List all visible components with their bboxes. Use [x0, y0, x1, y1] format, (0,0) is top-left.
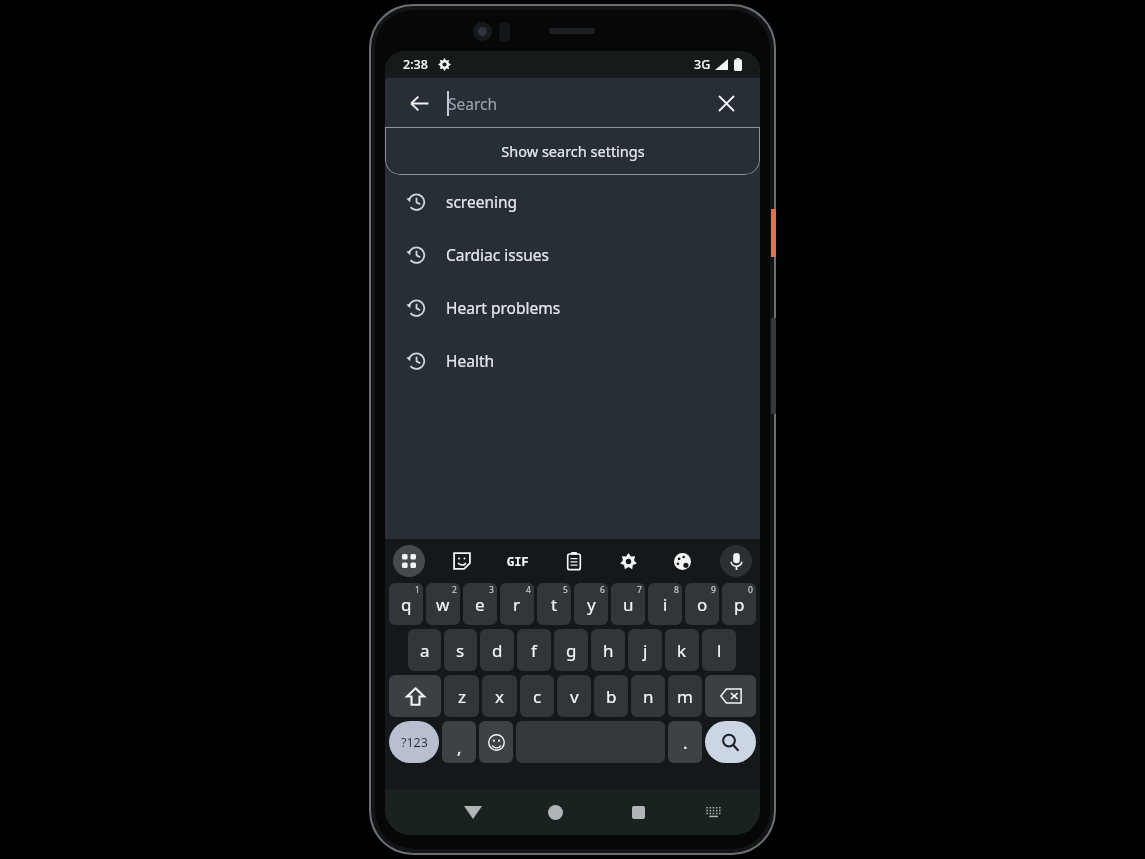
button[interactable]: r [500, 583, 534, 625]
button[interactable]: p [722, 583, 756, 625]
button[interactable]: Hide keyboard [680, 789, 747, 835]
button[interactable]: g [554, 629, 588, 671]
staticText: , [457, 736, 462, 759]
button[interactable]: k [665, 629, 699, 671]
button[interactable]: Health [385, 334, 760, 387]
button[interactable]: j [628, 629, 662, 671]
staticText: ?123 [401, 734, 428, 751]
staticText: . [683, 731, 688, 754]
button[interactable]: x [482, 675, 517, 717]
staticText: Health [446, 350, 495, 371]
button[interactable]: Emoji [479, 721, 513, 763]
staticText: 2 [452, 584, 457, 596]
button[interactable]: f [517, 629, 551, 671]
button[interactable]: Period [668, 721, 702, 763]
button[interactable]: i [648, 583, 682, 625]
staticText: x [495, 685, 504, 708]
button[interactable]: n [631, 675, 665, 717]
staticText: j [643, 639, 648, 662]
staticText: o [697, 593, 708, 616]
staticText: z [458, 685, 466, 708]
button[interactable]: screening [385, 175, 760, 228]
staticText: q [401, 593, 412, 616]
staticText: u [623, 593, 634, 616]
button[interactable]: t [537, 583, 571, 625]
button[interactable]: Home [514, 789, 597, 835]
button[interactable]: m [668, 675, 702, 717]
button[interactable]: z [444, 675, 479, 717]
button[interactable]: Back [431, 789, 514, 835]
staticText: 3 [489, 584, 494, 596]
button[interactable]: l [702, 629, 736, 671]
staticText: s [456, 639, 465, 662]
staticText: e [475, 593, 485, 616]
staticText: y [587, 593, 596, 616]
staticText: 9 [711, 584, 716, 596]
staticText: 1 [415, 584, 420, 596]
staticText: m [677, 685, 693, 708]
button[interactable]: v [557, 675, 591, 717]
staticText: h [603, 639, 614, 662]
button[interactable]: GIF [499, 545, 537, 577]
button[interactable]: Recents [597, 789, 680, 835]
staticText: 7 [637, 584, 642, 596]
button[interactable]: q [389, 583, 423, 625]
button[interactable]: s [444, 629, 477, 671]
button[interactable]: h [591, 629, 625, 671]
staticText: 5 [563, 584, 568, 596]
staticText: 6 [600, 584, 605, 596]
staticText: w [436, 593, 450, 616]
button[interactable]: Shift [389, 675, 441, 717]
staticText: c [533, 685, 542, 708]
staticText: Show search settings [501, 141, 645, 161]
staticText: k [677, 639, 687, 662]
button[interactable]: b [594, 675, 628, 717]
staticText: l [717, 639, 722, 662]
button[interactable]: Heart problems [385, 281, 760, 334]
button[interactable]: Settings [612, 545, 644, 577]
staticText: b [606, 685, 617, 708]
button[interactable]: Clipboard [558, 545, 590, 577]
button[interactable]: Search [705, 721, 756, 763]
button[interactable]: Switch keyboard [393, 545, 425, 577]
staticText: d [492, 639, 503, 662]
button[interactable]: a [408, 629, 441, 671]
button[interactable]: ?123 [389, 721, 439, 763]
button[interactable]: w [426, 583, 460, 625]
button[interactable]: Back [402, 86, 436, 120]
staticText: i [663, 593, 668, 616]
button[interactable]: Show search settings [385, 127, 760, 175]
button[interactable]: e [463, 583, 497, 625]
staticText: Heart problems [446, 297, 561, 318]
button[interactable]: o [685, 583, 719, 625]
staticText: f [531, 639, 537, 662]
button[interactable]: Theme [666, 545, 698, 577]
button[interactable]: d [480, 629, 514, 671]
button[interactable]: c [520, 675, 554, 717]
staticText: n [643, 685, 654, 708]
button[interactable]: Voice input [720, 545, 752, 577]
staticText: Search [448, 93, 498, 114]
button[interactable]: Backspace [705, 675, 756, 717]
staticText: 4 [526, 584, 531, 596]
staticText: p [734, 593, 745, 616]
staticText: a [420, 639, 430, 662]
button[interactable]: Comma [442, 721, 476, 763]
staticText: 8 [674, 584, 679, 596]
staticText: t [551, 593, 558, 616]
button[interactable]: Cardiac issues [385, 228, 760, 281]
staticText: 0 [748, 584, 753, 596]
staticText: v [570, 685, 579, 708]
staticText: screening [446, 191, 518, 212]
staticText: GIF [507, 553, 529, 569]
button[interactable]: y [574, 583, 608, 625]
staticText: Cardiac issues [446, 244, 549, 265]
button[interactable]: Stickers [446, 545, 478, 577]
staticText: g [566, 639, 577, 662]
staticText: r [513, 593, 521, 616]
button[interactable]: u [611, 583, 645, 625]
button[interactable]: Close [709, 86, 743, 120]
staticText: 3G [694, 56, 711, 73]
staticText: 2:38 [403, 56, 428, 73]
